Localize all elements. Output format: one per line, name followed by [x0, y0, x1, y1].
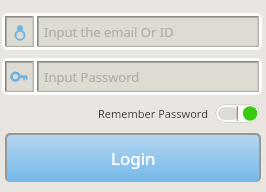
staticText: Remember Password [98, 106, 208, 121]
button[interactable]: Login [7, 135, 259, 182]
staticText: Input Password [44, 68, 140, 86]
other: Password [5, 61, 34, 92]
button[interactable]: User [5, 16, 259, 47]
button[interactable]: Remember password toggle [215, 104, 260, 123]
staticText: Login [111, 147, 156, 170]
other: User [5, 16, 34, 47]
button[interactable]: Password [5, 61, 259, 92]
staticText: Input the email Or ID [44, 23, 174, 41]
